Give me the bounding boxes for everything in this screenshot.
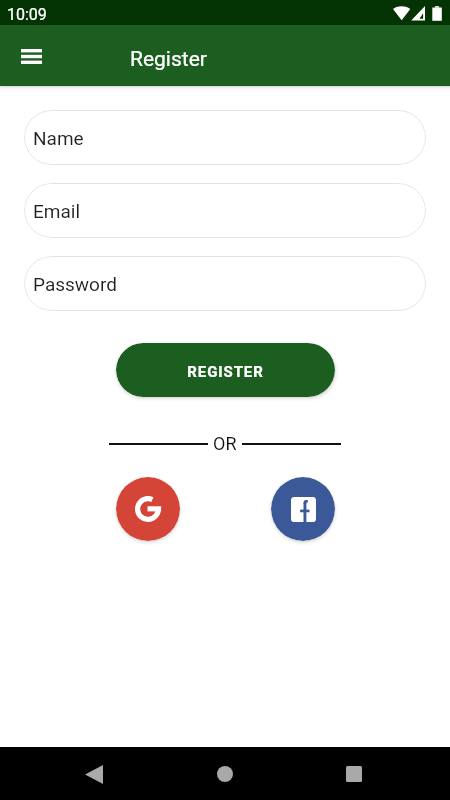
button[interactable]: Recent apps — [330, 750, 378, 798]
button[interactable]: Open navigation menu — [12, 37, 50, 75]
staticText: Name — [33, 127, 84, 149]
button[interactable]: Name — [24, 110, 426, 165]
button[interactable]: Password — [24, 256, 426, 311]
staticText: REGISTER — [187, 363, 264, 381]
staticText: Email — [33, 200, 81, 222]
staticText: Password — [33, 273, 117, 295]
button[interactable]: Back — [70, 750, 118, 798]
button[interactable]: Home — [201, 750, 249, 798]
button[interactable]: Email — [24, 183, 426, 238]
button[interactable]: Sign up with Google — [116, 477, 180, 541]
button[interactable]: REGISTER — [116, 343, 335, 397]
button[interactable]: Sign up with Facebook — [271, 477, 335, 541]
staticText: Register — [130, 47, 207, 72]
staticText: OR — [213, 433, 237, 454]
staticText: 10:09 — [7, 5, 47, 24]
